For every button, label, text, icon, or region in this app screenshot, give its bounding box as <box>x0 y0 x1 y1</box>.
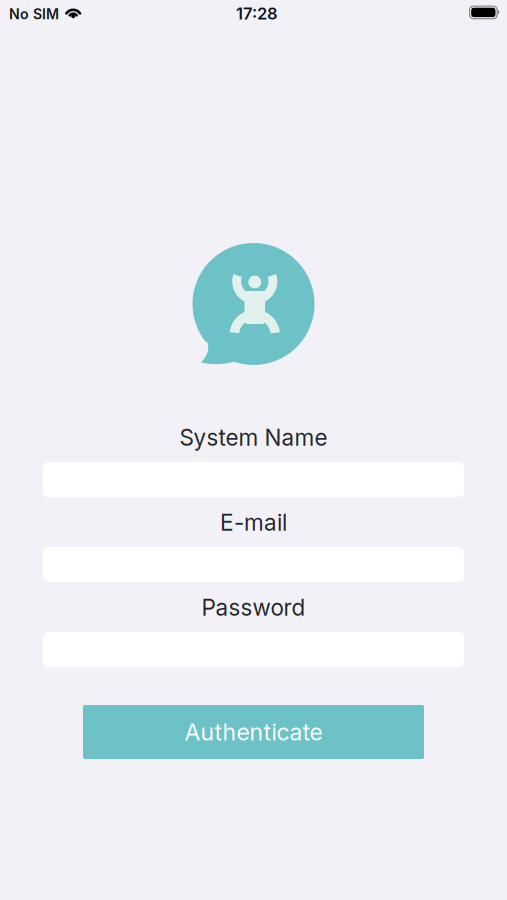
button[interactable]: Authenticate <box>83 705 424 759</box>
staticText: No SIM <box>9 6 59 23</box>
staticText: Authenticate <box>184 718 322 746</box>
staticText: System Name <box>179 424 327 451</box>
staticText: Password <box>201 594 305 621</box>
staticText: E-mail <box>220 509 287 536</box>
staticText: 17:28 <box>236 4 278 24</box>
